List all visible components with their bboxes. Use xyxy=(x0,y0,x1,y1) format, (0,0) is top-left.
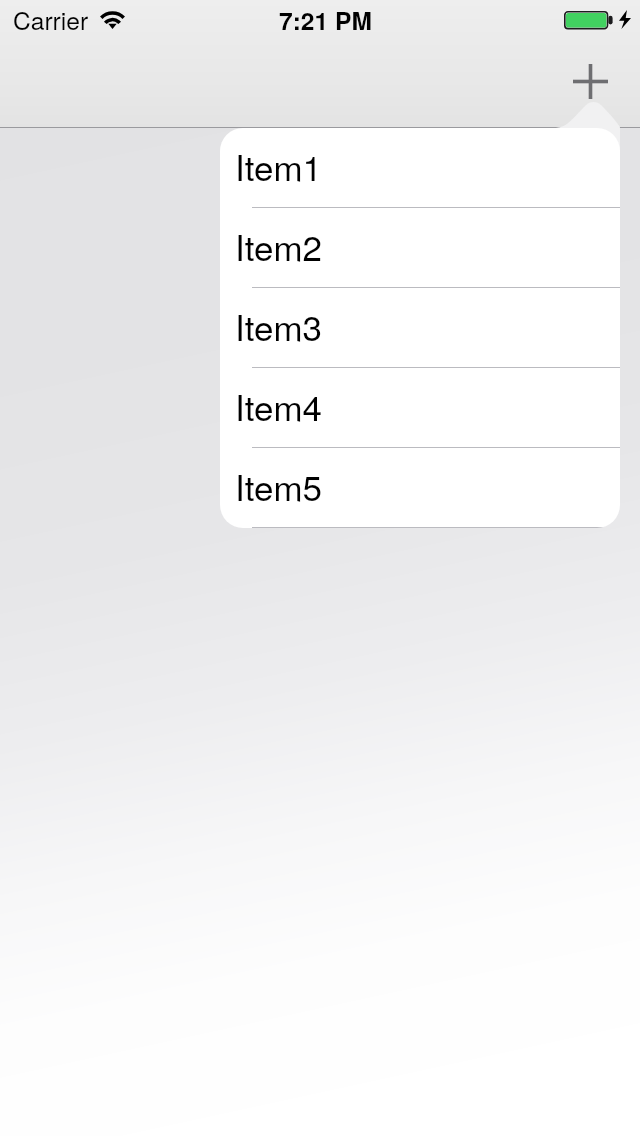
button[interactable]: Item3 xyxy=(220,288,620,368)
staticText: Item4 xyxy=(235,381,323,431)
staticText: Item5 xyxy=(235,461,323,511)
button[interactable]: Item1 xyxy=(220,128,620,208)
button[interactable]: Add xyxy=(558,49,622,113)
staticText: Item1 xyxy=(235,141,323,191)
button[interactable]: Item2 xyxy=(220,208,620,288)
staticText: 7:21 PM xyxy=(279,2,372,37)
button[interactable]: Item4 xyxy=(220,368,620,448)
staticText: Carrier xyxy=(13,2,89,37)
button[interactable]: Item5 xyxy=(220,448,620,528)
staticText: Item3 xyxy=(235,301,323,351)
staticText: Item2 xyxy=(235,221,323,271)
